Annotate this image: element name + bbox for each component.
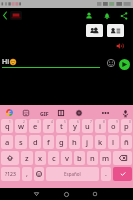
staticText: l: [112, 137, 115, 147]
staticText: w: [18, 121, 25, 131]
staticText: 9: [116, 120, 118, 124]
staticText: s: [19, 137, 23, 147]
button[interactable]: z: [21, 151, 33, 165]
button[interactable]: 2: [15, 119, 27, 133]
staticText: m: [102, 153, 110, 163]
staticText: v: [65, 153, 69, 163]
button[interactable]: Contact card: [107, 24, 124, 37]
button[interactable]: ,: [22, 167, 32, 181]
staticText: e: [33, 121, 38, 131]
staticText: p: [124, 121, 129, 131]
button[interactable]: Home: [60, 188, 72, 200]
staticText: c: [52, 153, 56, 163]
button[interactable]: k: [95, 135, 106, 149]
staticText: n: [90, 153, 95, 163]
button[interactable]: d: [29, 135, 41, 149]
staticText: y: [73, 121, 77, 131]
button[interactable]: Clipboard: [56, 108, 66, 118]
staticText: 2: [23, 120, 25, 124]
staticText: k: [98, 137, 103, 147]
button[interactable]: Voice input: [120, 108, 130, 118]
button[interactable]: Back: [0, 8, 9, 23]
button[interactable]: 5: [56, 119, 67, 133]
button[interactable]: Hi: [1, 56, 99, 68]
button[interactable]: s: [15, 135, 27, 149]
staticText: 5: [64, 120, 66, 124]
button[interactable]: Send: [119, 59, 130, 70]
staticText: GIF: [40, 110, 49, 117]
button[interactable]: j: [82, 135, 93, 149]
button[interactable]: ?123: [1, 167, 20, 181]
staticText: 7: [90, 120, 92, 124]
staticText: 0: [129, 120, 131, 124]
button[interactable]: b: [74, 151, 85, 165]
staticText: Hi: [2, 57, 9, 67]
staticText: u: [85, 121, 90, 131]
button[interactable]: More options: [99, 108, 111, 118]
staticText: j: [86, 137, 89, 147]
button[interactable]: g: [56, 135, 67, 149]
button[interactable]: Español: [46, 167, 99, 181]
button[interactable]: h: [69, 135, 80, 149]
button[interactable]: 1: [1, 119, 13, 133]
button[interactable]: Shift: [1, 151, 19, 165]
staticText: ñ: [124, 137, 129, 147]
staticText: 3: [37, 120, 39, 124]
staticText: o: [111, 121, 116, 131]
staticText: z: [25, 153, 29, 163]
button[interactable]: Emoji keyboard: [34, 167, 44, 181]
staticText: t: [60, 121, 63, 131]
staticText: Español: [64, 171, 81, 177]
button[interactable]: m: [100, 151, 111, 165]
button[interactable]: Enter: [113, 167, 132, 181]
button[interactable]: a: [1, 135, 13, 149]
staticText: i: [99, 121, 102, 131]
button[interactable]: 7: [82, 119, 93, 133]
button[interactable]: 8: [95, 119, 106, 133]
staticText: 8: [103, 120, 105, 124]
staticText: ,: [26, 169, 28, 179]
button[interactable]: Backspace: [113, 151, 132, 165]
staticText: f: [47, 137, 50, 147]
staticText: q: [5, 121, 10, 131]
button[interactable]: Settings: [74, 108, 84, 118]
button[interactable]: v: [61, 151, 72, 165]
button[interactable]: 4: [43, 119, 54, 133]
staticText: r: [47, 121, 51, 131]
staticText: .: [105, 169, 107, 179]
button[interactable]: 6: [69, 119, 80, 133]
button[interactable]: Group contact: [86, 24, 103, 37]
button[interactable]: GIF: [38, 108, 50, 118]
button[interactable]: l: [108, 135, 119, 149]
button[interactable]: c: [48, 151, 59, 165]
button[interactable]: Contact photo: [10, 11, 22, 20]
staticText: h: [72, 137, 77, 147]
staticText: b: [77, 153, 82, 163]
button[interactable]: Emoji: [105, 57, 116, 68]
staticText: d: [33, 137, 38, 147]
staticText: x: [38, 153, 43, 163]
button[interactable]: 9: [108, 119, 119, 133]
button[interactable]: Stickers: [21, 108, 31, 118]
button[interactable]: Notifications: [100, 8, 114, 23]
button[interactable]: .: [101, 167, 111, 181]
staticText: g: [59, 137, 64, 147]
button[interactable]: Contact: [82, 8, 96, 23]
staticText: ?123: [5, 171, 16, 178]
button[interactable]: 0: [121, 119, 132, 133]
button[interactable]: Share: [117, 8, 131, 23]
staticText: 4: [51, 120, 53, 124]
button[interactable]: Sound: [116, 42, 124, 50]
button[interactable]: x: [35, 151, 46, 165]
staticText: 1: [9, 120, 11, 124]
button[interactable]: 3: [29, 119, 41, 133]
button[interactable]: Recents: [89, 188, 101, 200]
button[interactable]: Back: [30, 188, 42, 200]
button[interactable]: f: [43, 135, 54, 149]
staticText: a: [5, 137, 10, 147]
staticText: 6: [77, 120, 79, 124]
button[interactable]: n: [87, 151, 98, 165]
button[interactable]: ñ: [121, 135, 132, 149]
